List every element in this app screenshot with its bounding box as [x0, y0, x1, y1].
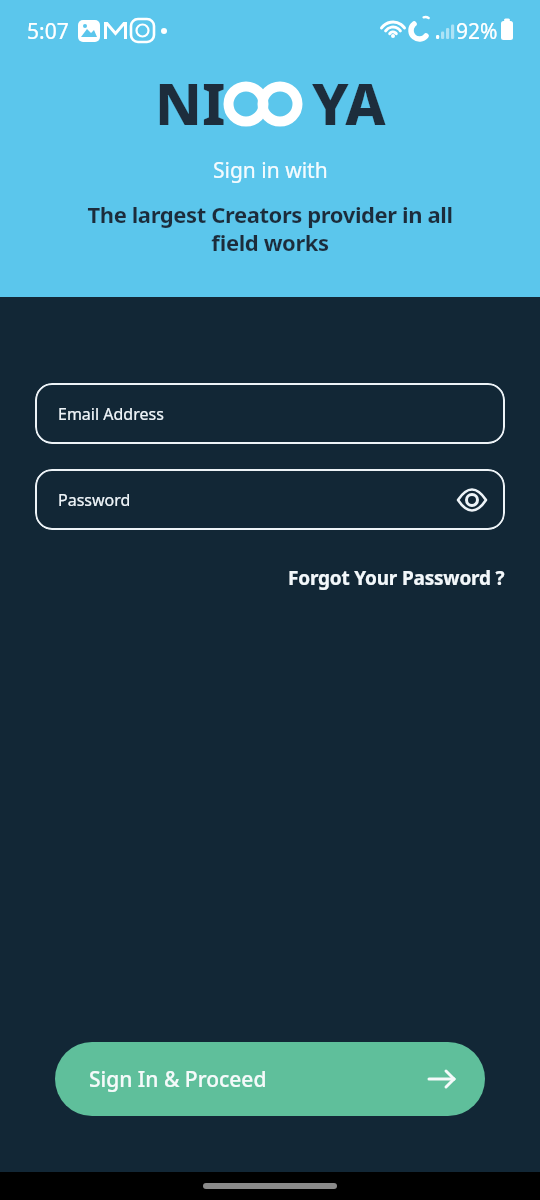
- staticText: 92%: [456, 17, 498, 46]
- button[interactable]: Email Address: [35, 383, 505, 444]
- button[interactable]: Sign In & Proceed: [55, 1042, 485, 1116]
- button[interactable]: Password: [35, 469, 505, 530]
- staticText: 5:07: [27, 17, 69, 46]
- staticText: NI: [155, 64, 226, 142]
- staticText: Sign In & Proceed: [89, 1065, 267, 1094]
- staticText: The largest Creators provider in all fie…: [87, 199, 453, 257]
- staticText: Password: [58, 489, 131, 511]
- button[interactable]: Forgot Your Password ?: [288, 565, 505, 591]
- staticText: Email Address: [58, 403, 164, 425]
- staticText: YA: [312, 64, 386, 142]
- staticText: Sign in with: [213, 156, 328, 185]
